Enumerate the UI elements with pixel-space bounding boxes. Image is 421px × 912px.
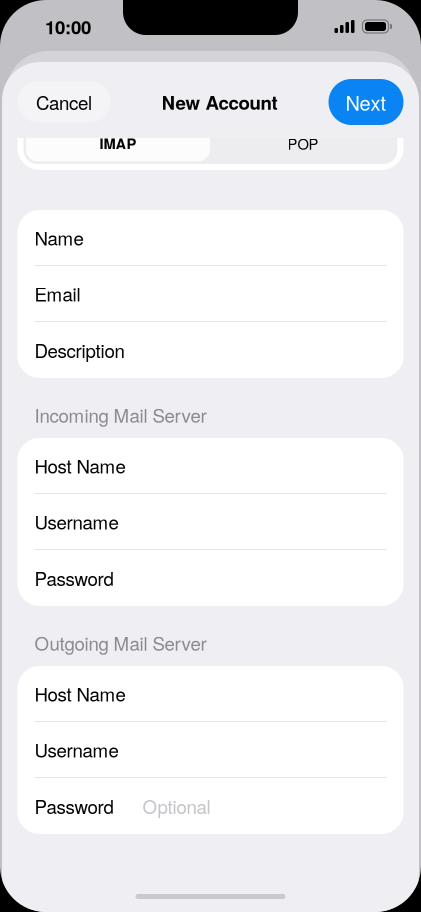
staticText: Host Name xyxy=(34,680,125,707)
staticText: Next xyxy=(345,88,386,116)
staticText: Name xyxy=(34,224,83,251)
button[interactable]: Password xyxy=(17,550,403,606)
staticText: New Account xyxy=(161,89,277,115)
button[interactable]: Cancel xyxy=(17,81,110,122)
staticText: POP xyxy=(287,133,318,154)
button[interactable]: Email xyxy=(17,266,403,322)
button[interactable]: IMAP xyxy=(26,125,210,161)
staticText: Email xyxy=(34,280,80,307)
button[interactable]: Description xyxy=(17,322,403,378)
staticText: Username xyxy=(34,736,118,763)
staticText: 10:00 xyxy=(45,13,91,40)
button[interactable]: Host Name xyxy=(17,666,403,722)
button[interactable]: Host Name xyxy=(17,438,403,494)
staticText: Outgoing Mail Server xyxy=(34,629,206,656)
button[interactable]: Username xyxy=(17,722,403,778)
button[interactable]: POP xyxy=(211,125,395,161)
button[interactable]: Next xyxy=(328,79,403,125)
staticText: Incoming Mail Server xyxy=(34,401,206,428)
staticText: Cancel xyxy=(36,89,92,115)
staticText: Password xyxy=(34,565,113,591)
staticText: Password xyxy=(34,793,113,819)
staticText: Username xyxy=(34,508,118,535)
staticText: Description xyxy=(34,337,124,363)
button[interactable]: Password xyxy=(17,778,403,834)
button[interactable]: Name xyxy=(17,210,403,266)
staticText: Optional xyxy=(142,793,210,819)
staticText: Host Name xyxy=(34,452,125,479)
staticText: IMAP xyxy=(99,133,136,154)
button[interactable]: Username xyxy=(17,494,403,550)
